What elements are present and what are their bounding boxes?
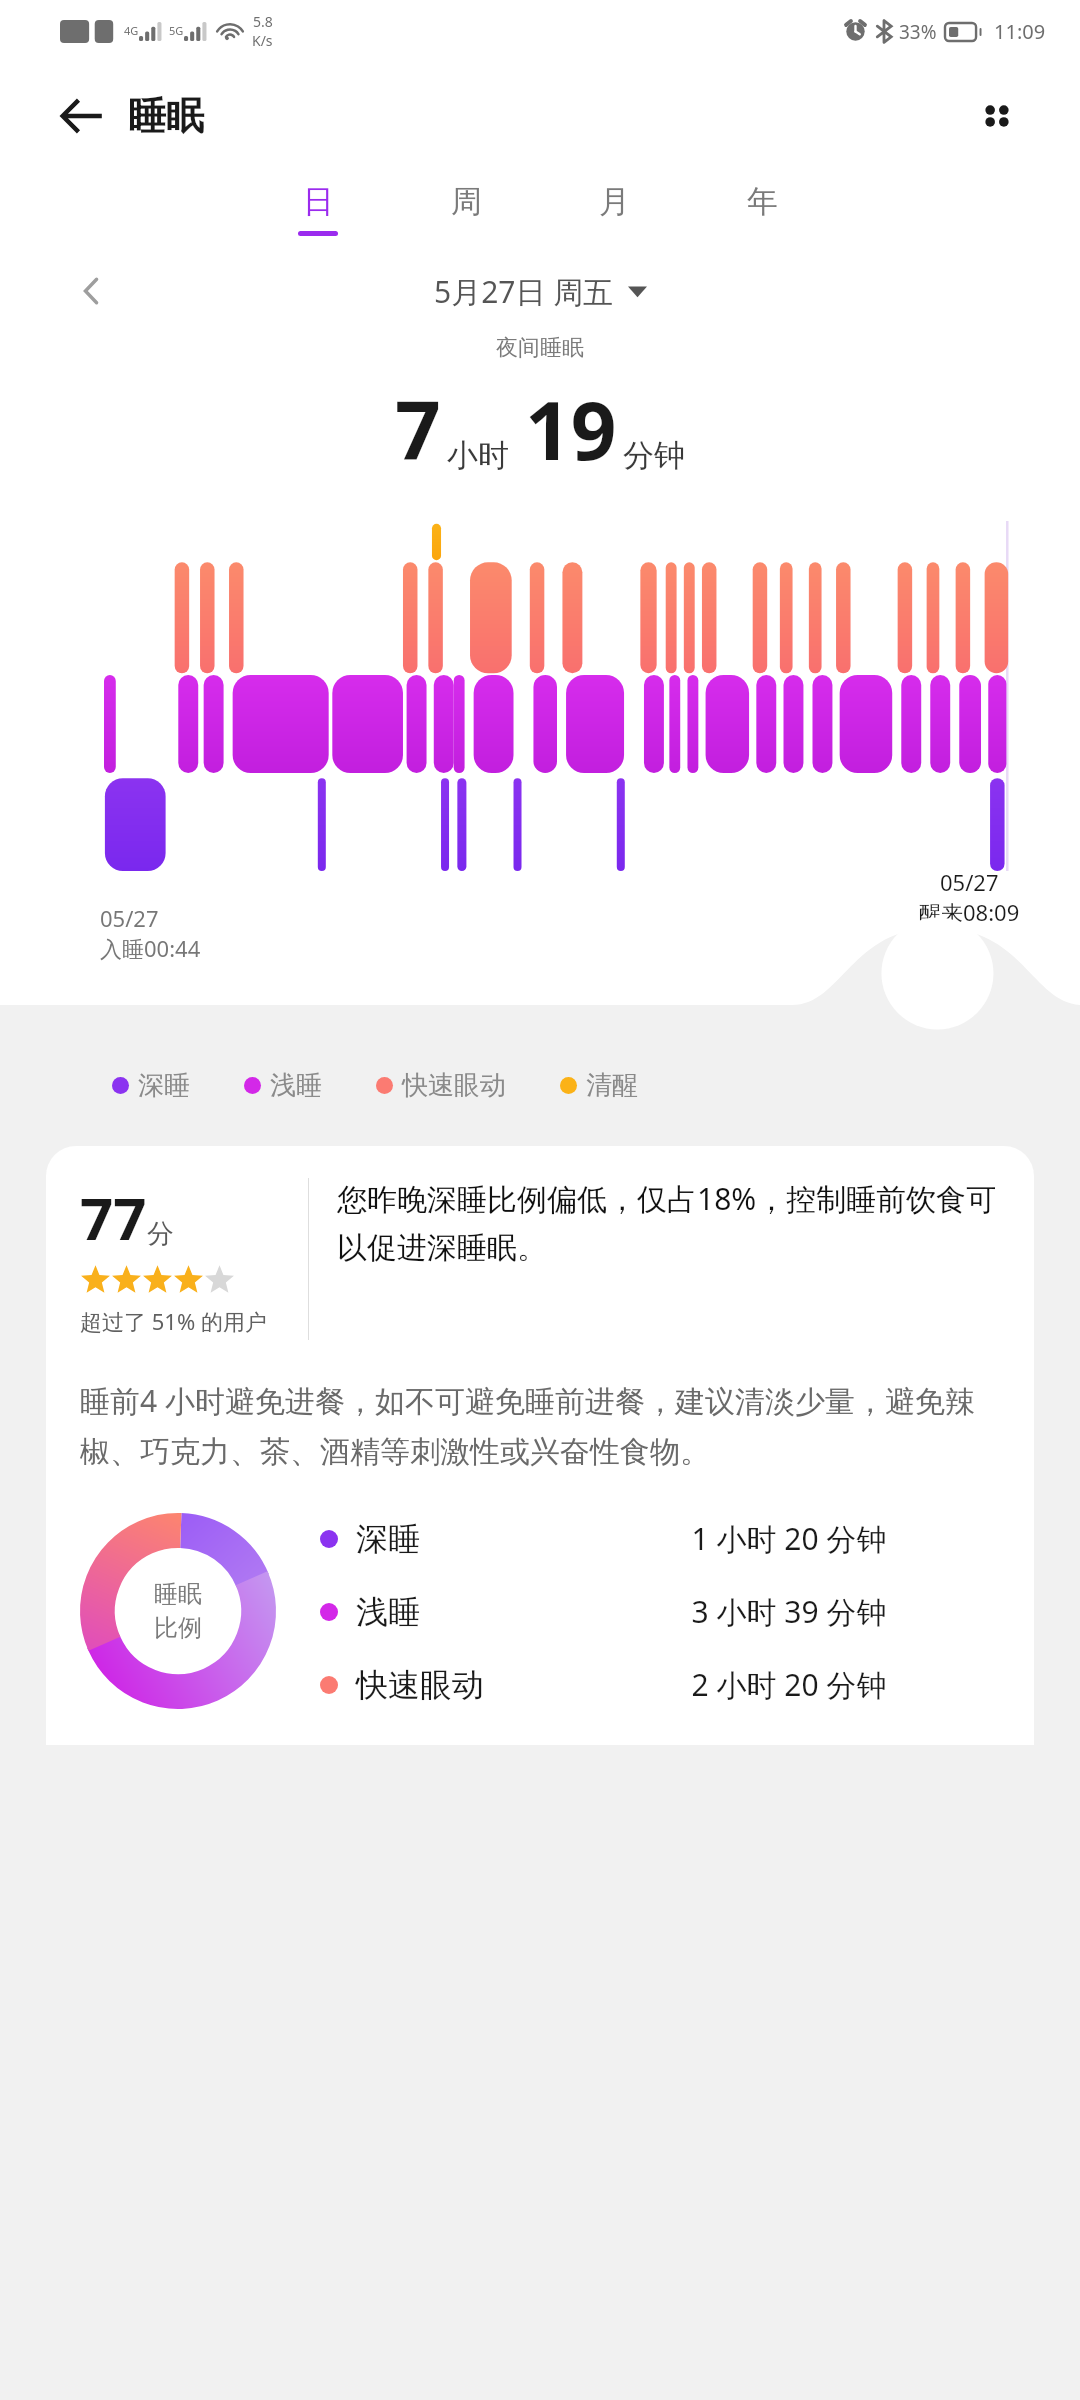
staticText: 入睡00:44 xyxy=(100,933,201,963)
staticText: 年 xyxy=(747,182,778,221)
button[interactable]: 周 xyxy=(438,178,494,240)
staticText: 清醒 xyxy=(586,1069,638,1102)
button[interactable]: 返回 xyxy=(48,82,116,150)
button[interactable]: 快速眼动 xyxy=(376,1069,506,1102)
staticText: 11:09 xyxy=(994,18,1046,45)
staticText: 05/27 xyxy=(940,867,999,897)
staticText: 月 xyxy=(599,182,630,221)
staticText: 深睡 xyxy=(356,1519,572,1559)
staticText: 醒来08:09 xyxy=(919,897,1020,927)
staticText: 5.8 xyxy=(253,12,273,31)
staticText: 分 xyxy=(147,1217,174,1251)
button[interactable]: 快速眼动 xyxy=(320,1664,1006,1705)
button[interactable]: 深睡 xyxy=(320,1518,1006,1559)
button[interactable]: 深睡 xyxy=(112,1069,190,1102)
staticText: 睡眠 xyxy=(128,92,204,140)
staticText: 分钟 xyxy=(623,436,685,475)
staticText: 浅睡 xyxy=(270,1069,322,1102)
staticText: 比例 xyxy=(154,1613,202,1643)
button[interactable]: 上一天 xyxy=(66,266,116,316)
button[interactable]: 更多选项 xyxy=(960,79,1034,153)
staticText: 睡前4 小时避免进餐，如不可避免睡前进餐，建议清淡少量，避免辣椒、巧克力、茶、酒… xyxy=(80,1380,1006,1471)
staticText: 5G xyxy=(169,23,184,38)
staticText: 5月27日 周五 xyxy=(434,271,614,312)
staticText: 19 xyxy=(525,374,617,483)
staticText: 日 xyxy=(303,182,334,221)
button[interactable]: 5月27日 周五 xyxy=(424,268,657,315)
staticText: 您昨晚深睡比例偏低，仅占18%，控制睡前饮食可以促进深睡眠。 xyxy=(337,1178,1006,1267)
staticText: 夜间睡眠 xyxy=(0,334,1080,362)
button[interactable]: 年 xyxy=(734,178,790,240)
staticText: 3 小时 39 分钟 xyxy=(572,1591,1006,1632)
staticText: 05/27 xyxy=(100,903,159,933)
staticText: 4G xyxy=(124,23,139,38)
staticText: 33% xyxy=(899,19,937,45)
staticText: 2 小时 20 分钟 xyxy=(572,1664,1006,1705)
staticText: 1 小时 20 分钟 xyxy=(572,1518,1006,1559)
staticText: 77 xyxy=(80,1178,147,1257)
staticText: 浅睡 xyxy=(356,1592,572,1632)
staticText: 小时 xyxy=(447,436,509,475)
button[interactable]: 77 xyxy=(46,1146,1034,1745)
staticText: 周 xyxy=(451,182,482,221)
staticText: K/s xyxy=(252,31,273,50)
staticText: 深睡 xyxy=(138,1069,190,1102)
staticText: 快速眼动 xyxy=(356,1665,572,1705)
staticText: 快速眼动 xyxy=(402,1069,506,1102)
button[interactable]: 月 xyxy=(586,178,642,240)
button[interactable]: 浅睡 xyxy=(244,1069,322,1102)
button[interactable]: 清醒 xyxy=(560,1069,638,1102)
staticText: 超过了 51% 的用户 xyxy=(80,1306,267,1336)
staticText: 睡眠 xyxy=(154,1579,202,1609)
button[interactable]: 日 xyxy=(290,178,346,240)
staticText: 7 xyxy=(395,374,441,483)
button[interactable]: 浅睡 xyxy=(320,1591,1006,1632)
